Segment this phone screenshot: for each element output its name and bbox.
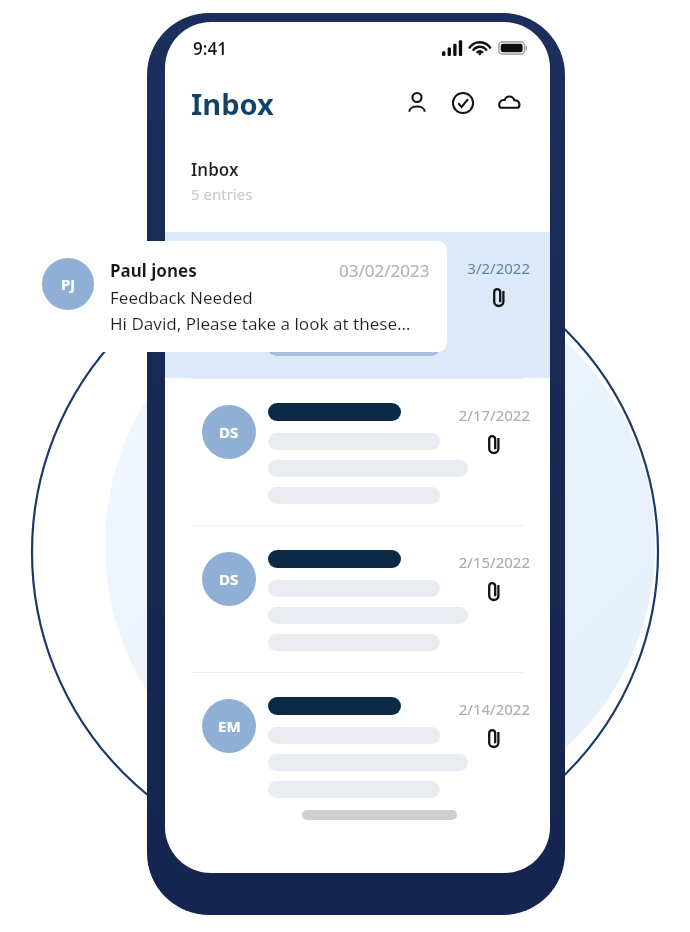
button[interactable]: Attachment	[486, 284, 512, 310]
staticText: 2/15/2022	[458, 552, 530, 572]
staticText: EM	[218, 716, 241, 736]
staticText: 5 entries	[191, 184, 253, 204]
staticText: 3/2/2022	[467, 258, 530, 278]
staticText: 03/02/2023	[339, 259, 430, 282]
button[interactable]: 3/2/2022	[165, 232, 550, 378]
staticText: 2/17/2022	[458, 405, 530, 425]
button[interactable]: Attachment	[481, 725, 507, 751]
button[interactable]: Account	[402, 88, 432, 118]
button[interactable]: Attachment	[481, 578, 507, 604]
staticText: Inbox	[191, 84, 274, 123]
staticText: Hi David, Please take a look at these…	[110, 312, 411, 335]
button[interactable]: PJ	[22, 241, 447, 352]
button[interactable]: EM	[165, 673, 550, 819]
staticText: Feedback Needed	[110, 286, 253, 309]
button[interactable]: Attachment	[481, 431, 507, 457]
staticText: Paul jones	[110, 259, 197, 282]
staticText: DS	[219, 422, 239, 442]
staticText: 2/14/2022	[458, 699, 530, 719]
button[interactable]: Mark as done	[448, 88, 478, 118]
button[interactable]: Cloud storage	[494, 88, 524, 118]
button[interactable]: DS	[165, 379, 550, 525]
staticText: 9:41	[193, 37, 227, 60]
button[interactable]: DS	[165, 526, 550, 672]
staticText: DS	[219, 569, 239, 589]
staticText: Inbox	[191, 158, 239, 181]
staticText: PJ	[61, 274, 76, 294]
